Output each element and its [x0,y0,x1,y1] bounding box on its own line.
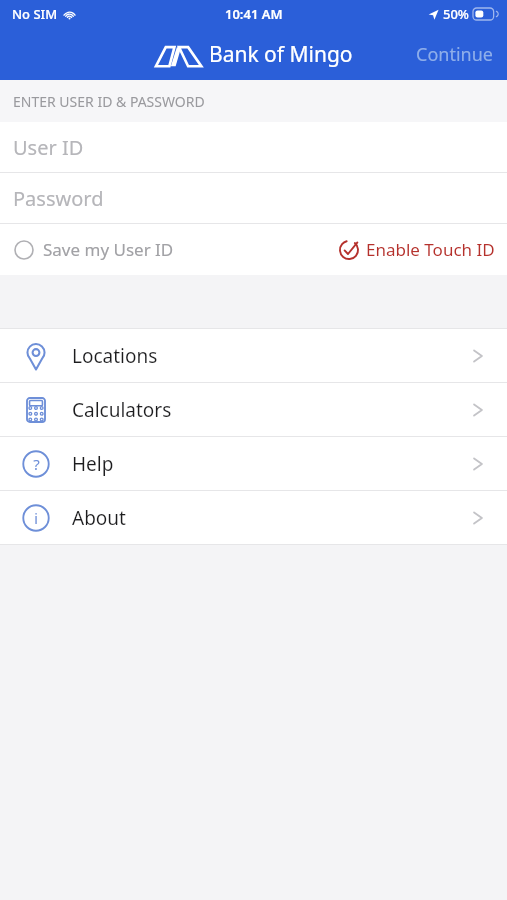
staticText: Help [72,451,114,477]
staticText: Save my User ID [43,238,174,261]
button[interactable]: User ID [0,122,507,172]
button[interactable]: Calculators [0,383,507,436]
staticText: 50% [443,5,469,23]
staticText: Bank of Mingo [209,40,353,69]
button[interactable]: Locations [0,329,507,382]
staticText: Enable Touch ID [366,238,495,261]
staticText: 10:41 AM [225,5,283,23]
button[interactable]: ? [0,437,507,490]
staticText: ? [33,454,40,474]
button[interactable]: Password [0,173,507,223]
button[interactable]: Continue [402,32,507,77]
staticText: ENTER USER ID & PASSWORD [13,92,205,111]
staticText: Calculators [72,397,172,423]
button[interactable]: Save my User ID [0,230,184,269]
staticText: User ID [13,134,84,161]
button[interactable]: i [0,491,507,544]
button[interactable]: Enable Touch ID [329,230,507,269]
staticText: Locations [72,343,158,369]
staticText: Password [13,185,104,212]
staticText: Continue [416,42,493,67]
staticText: About [72,505,126,531]
staticText: i [34,509,38,528]
staticText: No SIM [12,5,58,23]
